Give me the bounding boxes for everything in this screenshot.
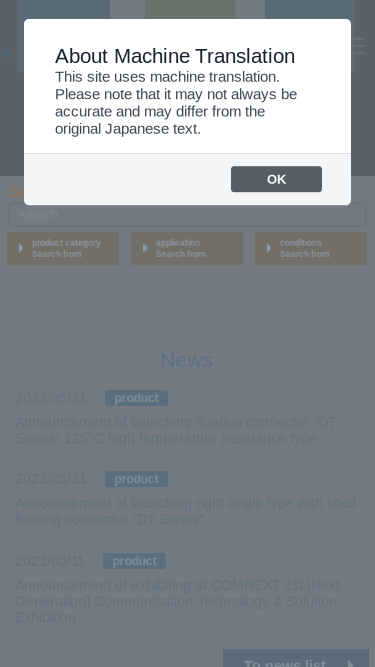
staticText: product — [112, 554, 156, 568]
staticText: search — [19, 207, 58, 221]
staticText: OK — [267, 172, 286, 186]
staticText: application — [156, 238, 200, 247]
staticText: This site uses machine translation. — [55, 68, 280, 85]
staticText: 2023/05/31 — [15, 390, 87, 406]
staticText: conditions — [280, 238, 322, 247]
button[interactable]: product category — [7, 232, 119, 265]
staticText: product — [114, 472, 158, 486]
button[interactable]: 2023/05/31 — [15, 469, 365, 527]
button[interactable]: application — [131, 232, 243, 265]
staticText: About Machine Translation — [55, 44, 295, 67]
button[interactable]: To news list — [223, 649, 369, 667]
staticText: Exhibition — [15, 610, 76, 625]
staticText: Search from — [32, 249, 81, 259]
staticText: Series" 125°C high temperature resistanc… — [15, 430, 317, 446]
staticText: Search from — [156, 249, 205, 259]
staticText: product category — [32, 238, 101, 247]
staticText: Announcement of exhibiting at COMNEXT 1s… — [15, 577, 340, 593]
staticText: Announcement of launching right angle ty… — [15, 495, 356, 511]
staticText: News — [160, 348, 213, 371]
staticText: product — [114, 391, 158, 405]
staticText: Announcement of launching floating conne… — [15, 414, 337, 430]
button[interactable]: 2023/05/11 — [15, 551, 365, 626]
staticText: original Japanese text. — [55, 120, 201, 137]
staticText: accurate and may differ from the — [55, 103, 265, 120]
staticText: To news list — [244, 658, 326, 667]
button[interactable]: 2023/05/31 — [15, 388, 365, 446]
button[interactable]: conditions — [255, 232, 367, 265]
staticText: Please note that it may not always be — [55, 86, 297, 102]
staticText: 2023/05/31 — [15, 471, 87, 487]
staticText: Generation] Communication Technology & S… — [15, 593, 337, 609]
button[interactable]: Menu — [347, 34, 371, 58]
staticText: floating connector "DT Series" — [15, 511, 204, 527]
button[interactable]: OK — [231, 166, 322, 192]
staticText: Search — [8, 182, 62, 200]
staticText: 2023/05/11 — [15, 553, 85, 569]
staticText: Search from — [280, 249, 329, 259]
